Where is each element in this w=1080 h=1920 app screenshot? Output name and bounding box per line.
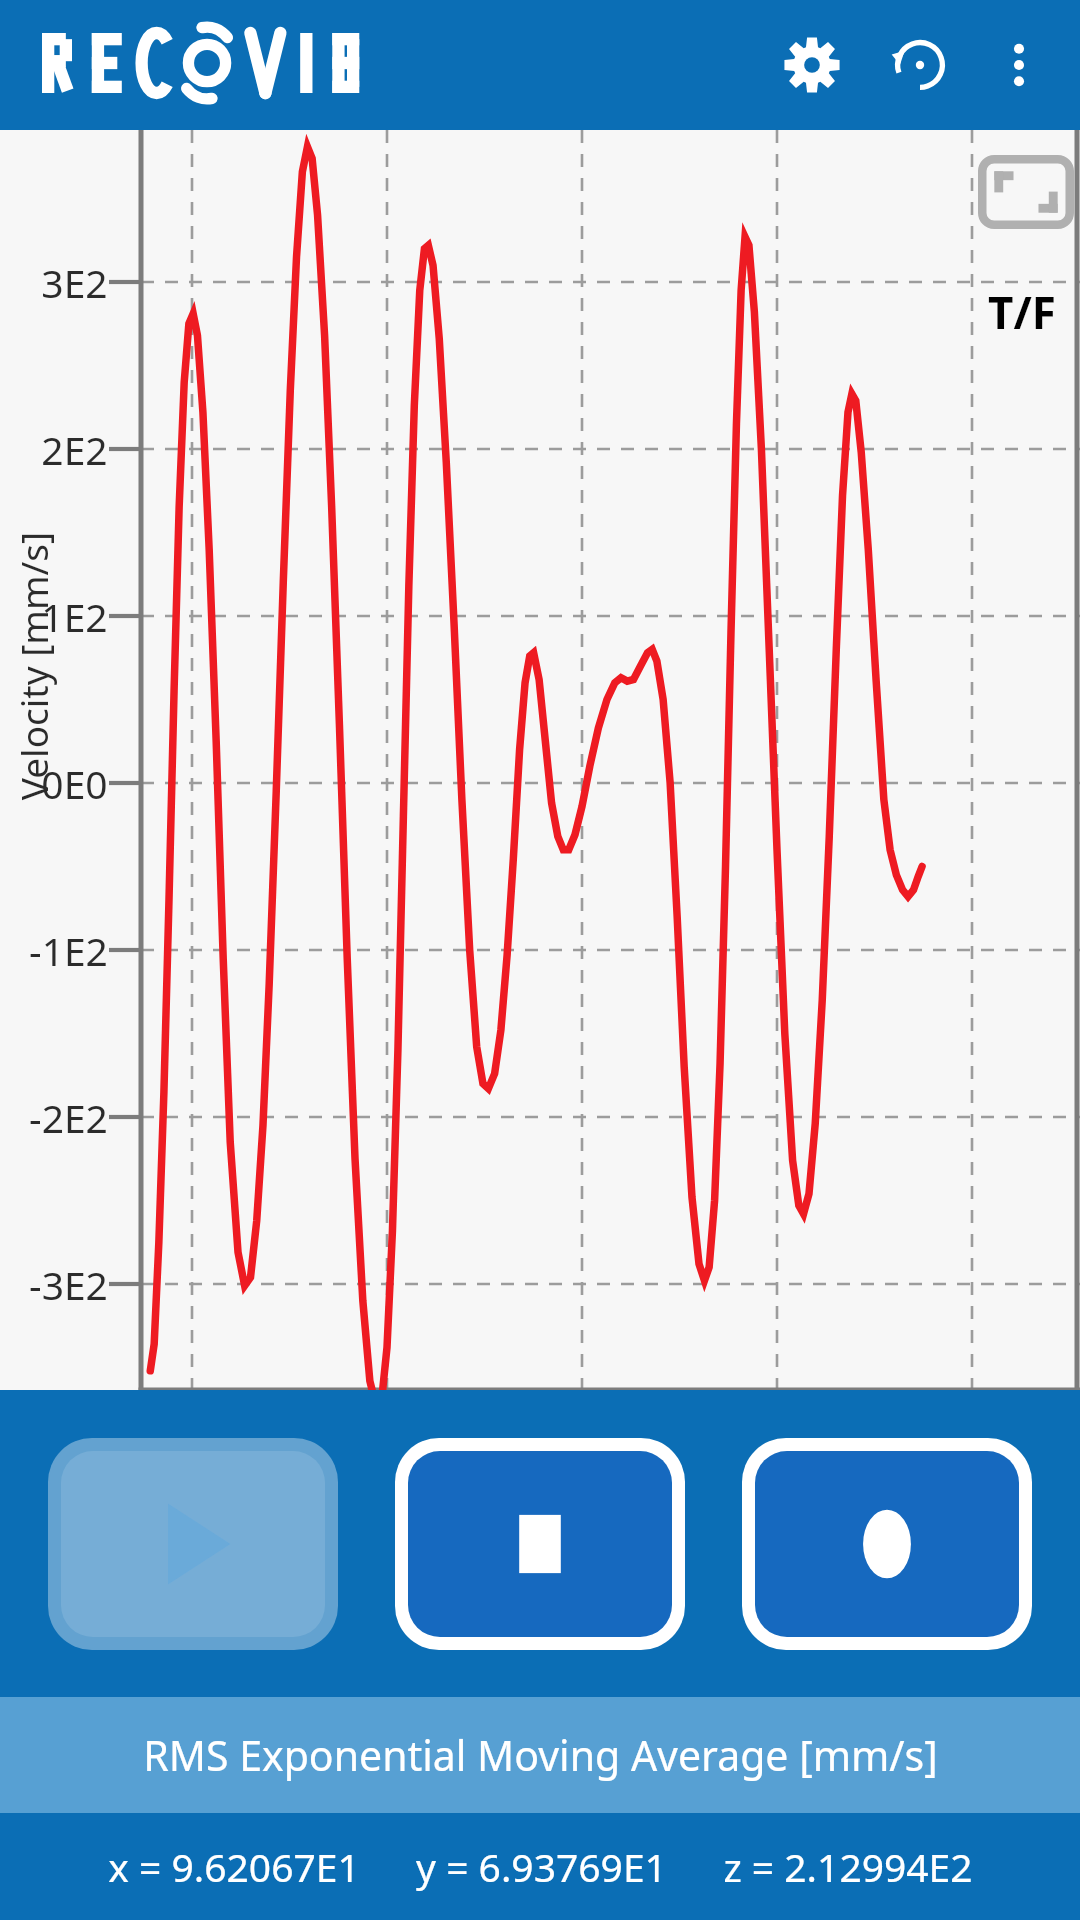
staticText: 2E2 — [41, 423, 108, 476]
staticText: 11.5 — [738, 1424, 816, 1477]
button[interactable]: More options — [974, 0, 1064, 130]
staticText: y = 6.93769E1 — [416, 1840, 667, 1893]
staticText: -2E2 — [29, 1091, 108, 1144]
staticText: x = 9.62067E1 — [108, 1840, 360, 1893]
staticText: Velocity [mm/s] — [7, 531, 57, 800]
staticText: T/F — [988, 282, 1056, 342]
staticText: 11 — [560, 1424, 605, 1477]
button[interactable]: Fullscreen — [978, 155, 1074, 229]
staticText: 12 — [950, 1424, 995, 1477]
staticText: 3E2 — [41, 256, 108, 309]
button[interactable]: Play — [48, 1438, 338, 1650]
staticText: 0E0 — [41, 757, 108, 810]
staticText: 1E2 — [41, 590, 108, 643]
staticText: 10.5 — [348, 1424, 426, 1477]
staticText: -1E2 — [29, 924, 108, 977]
button[interactable]: Record — [742, 1438, 1032, 1650]
staticText: z = 2.12994E2 — [723, 1840, 973, 1893]
staticText: RMS Exponential Moving Average [mm/s] — [143, 1727, 938, 1783]
staticText: -3E2 — [29, 1258, 108, 1311]
staticText: Time [s] — [468, 1472, 613, 1525]
staticText: 10 — [170, 1424, 215, 1477]
button[interactable]: Settings — [758, 0, 866, 130]
button[interactable]: Stop — [395, 1438, 685, 1650]
button[interactable]: History — [866, 0, 974, 130]
